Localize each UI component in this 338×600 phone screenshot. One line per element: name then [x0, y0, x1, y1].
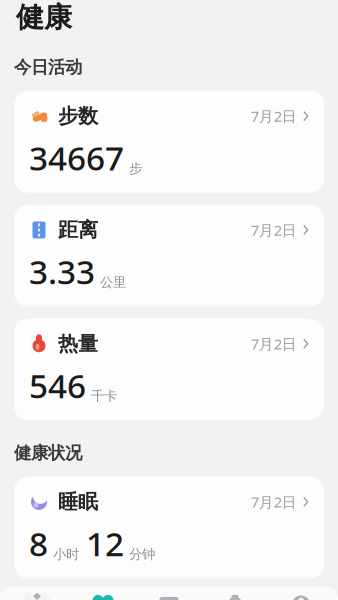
button[interactable]: 睡眠	[14, 477, 324, 578]
staticText: 3.33	[29, 249, 95, 293]
staticText: 步	[129, 160, 142, 177]
staticText: 热量	[58, 331, 98, 356]
staticText: 7月2日	[251, 220, 297, 240]
staticText: 分钟	[129, 546, 155, 562]
staticText: 546	[29, 363, 86, 407]
staticText: 健康状况	[14, 442, 82, 464]
staticText: 34667	[29, 135, 124, 180]
staticText: 7月2日	[251, 334, 297, 354]
staticText: 步数	[58, 104, 98, 128]
button[interactable]: 发现	[136, 586, 202, 600]
staticText: 8	[29, 521, 48, 565]
button[interactable]: 首页	[4, 586, 70, 600]
staticText: 公里	[100, 274, 126, 290]
staticText: 7月2日	[251, 492, 297, 512]
staticText: 今日活动	[14, 57, 82, 78]
button[interactable]: 设备	[202, 586, 268, 600]
staticText: 健康	[16, 0, 72, 35]
button[interactable]: 我的	[268, 586, 334, 600]
staticText: 小时	[53, 546, 79, 562]
staticText: 距离	[58, 218, 98, 242]
staticText: 12	[86, 521, 124, 565]
button[interactable]: 健康	[70, 586, 136, 600]
staticText: 睡眠	[58, 490, 98, 514]
button[interactable]: 距离	[14, 205, 324, 306]
button[interactable]: 热量	[14, 318, 324, 420]
staticText: 7月2日	[251, 106, 297, 126]
staticText: 千卡	[91, 388, 117, 404]
button[interactable]: 步数	[14, 91, 324, 193]
